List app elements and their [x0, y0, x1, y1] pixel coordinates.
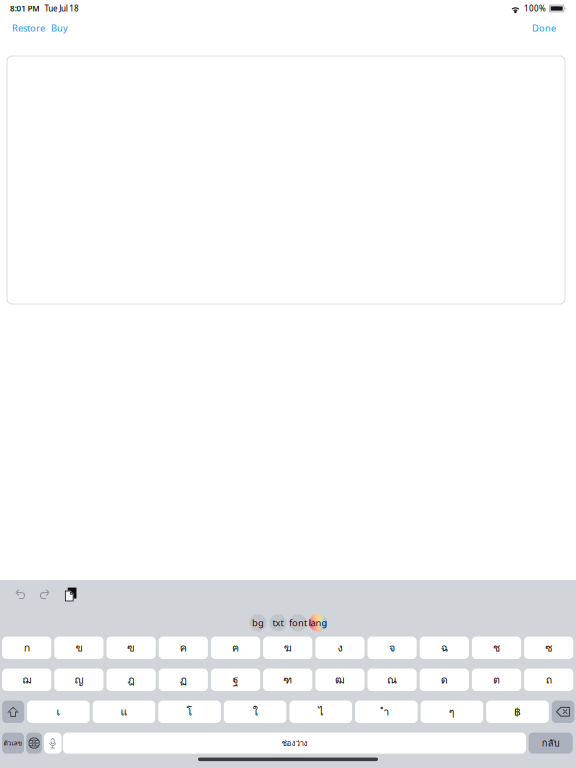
button[interactable]: ก — [2, 637, 51, 659]
button[interactable]: ฒ — [315, 669, 364, 691]
staticText: lang — [308, 617, 327, 629]
button[interactable]: font — [289, 614, 307, 631]
button[interactable]: ฃ — [106, 637, 156, 659]
staticText: font — [289, 617, 307, 629]
button[interactable]: ด — [420, 669, 469, 691]
staticText: ง — [337, 639, 342, 656]
staticText: เ — [56, 703, 60, 720]
staticText: ค — [180, 639, 187, 656]
staticText: ญ — [74, 671, 83, 688]
staticText: ด — [441, 671, 448, 688]
button[interactable]: txt — [269, 614, 287, 631]
button[interactable]: ญ — [54, 669, 103, 691]
staticText: ฅ — [232, 639, 239, 656]
staticText: ำ — [383, 703, 389, 720]
staticText: ฌ — [22, 671, 31, 688]
button[interactable]: Shift — [2, 701, 24, 723]
button[interactable]: Buy — [48, 18, 71, 38]
staticText: ฑ — [283, 671, 292, 688]
staticText: ไ — [318, 703, 323, 720]
button[interactable]: ช่องว่าง — [63, 733, 526, 754]
button[interactable]: Next keyboard — [26, 733, 42, 754]
button[interactable]: ใ — [224, 701, 286, 723]
button[interactable]: lang — [309, 614, 327, 631]
staticText: ฉ — [441, 639, 448, 656]
staticText: ช — [493, 639, 500, 656]
staticText: ณ — [387, 671, 397, 688]
button[interactable]: ฅ — [211, 637, 260, 659]
button[interactable]: Redo — [32, 585, 58, 603]
button[interactable]: ำ — [355, 701, 418, 723]
button[interactable]: ฿ — [486, 701, 549, 723]
button[interactable]: เ — [27, 701, 90, 723]
staticText: ฃ — [127, 639, 135, 656]
staticText: Buy — [51, 22, 68, 34]
button[interactable]: ฑ — [263, 669, 312, 691]
button[interactable]: ถ — [524, 669, 573, 691]
staticText: จ — [389, 639, 395, 656]
button[interactable]: ช — [472, 637, 521, 659]
button[interactable]: ๆ — [421, 701, 483, 723]
staticText: ถ — [546, 671, 552, 688]
staticText: ๆ — [449, 703, 455, 720]
button[interactable]: แ — [93, 701, 155, 723]
button[interactable]: ฆ — [263, 637, 312, 659]
button[interactable]: ค — [159, 637, 208, 659]
button[interactable]: Paste — [58, 585, 83, 603]
staticText: ต — [493, 671, 500, 688]
staticText: 100% — [524, 3, 546, 14]
button[interactable]: ฏ — [159, 669, 208, 691]
button[interactable]: ซ — [524, 637, 573, 659]
staticText: ฆ — [284, 639, 292, 656]
button[interactable]: Delete — [552, 701, 574, 723]
button[interactable]: Restore — [9, 18, 48, 38]
button[interactable]: ฐ — [211, 669, 260, 691]
button[interactable]: ข — [54, 637, 103, 659]
button[interactable]: ฎ — [106, 669, 156, 691]
staticText: 8:01 PM — [10, 3, 39, 14]
button[interactable]: ตัวเลข — [2, 733, 24, 754]
button[interactable]: กลับ — [529, 733, 573, 754]
button[interactable]: จ — [367, 637, 417, 659]
button[interactable]: ฌ — [2, 669, 51, 691]
button[interactable]: ง — [315, 637, 364, 659]
staticText: ตัวเลข — [4, 738, 23, 748]
staticText: ฏ — [180, 671, 187, 688]
button[interactable]: ไ — [289, 701, 352, 723]
button[interactable]: Undo — [7, 585, 32, 603]
button[interactable]: ณ — [367, 669, 417, 691]
button[interactable]: ฉ — [420, 637, 469, 659]
staticText: ซ — [545, 639, 552, 656]
staticText: ช่องว่าง — [281, 737, 307, 749]
staticText: bg — [252, 617, 264, 629]
staticText: ฿ — [514, 706, 521, 718]
button[interactable]: โ — [158, 701, 221, 723]
button[interactable]: bg — [249, 614, 267, 631]
staticText: Tue Jul 18 — [39, 3, 79, 14]
staticText: txt — [272, 617, 283, 629]
staticText: ฎ — [128, 671, 135, 688]
staticText: Done — [532, 22, 556, 34]
button[interactable]: Done — [529, 18, 559, 38]
staticText: ใ — [253, 703, 258, 720]
staticText: ก — [24, 639, 30, 656]
button[interactable]: Dictation — [44, 733, 62, 754]
staticText: แ — [120, 703, 127, 720]
staticText: โ — [186, 703, 192, 720]
button[interactable]: ต — [472, 669, 521, 691]
staticText: Restore — [12, 22, 45, 34]
staticText: ข — [75, 639, 82, 656]
staticText: ฒ — [335, 671, 345, 688]
staticText: ฐ — [232, 671, 238, 688]
staticText: กลับ — [542, 736, 560, 750]
